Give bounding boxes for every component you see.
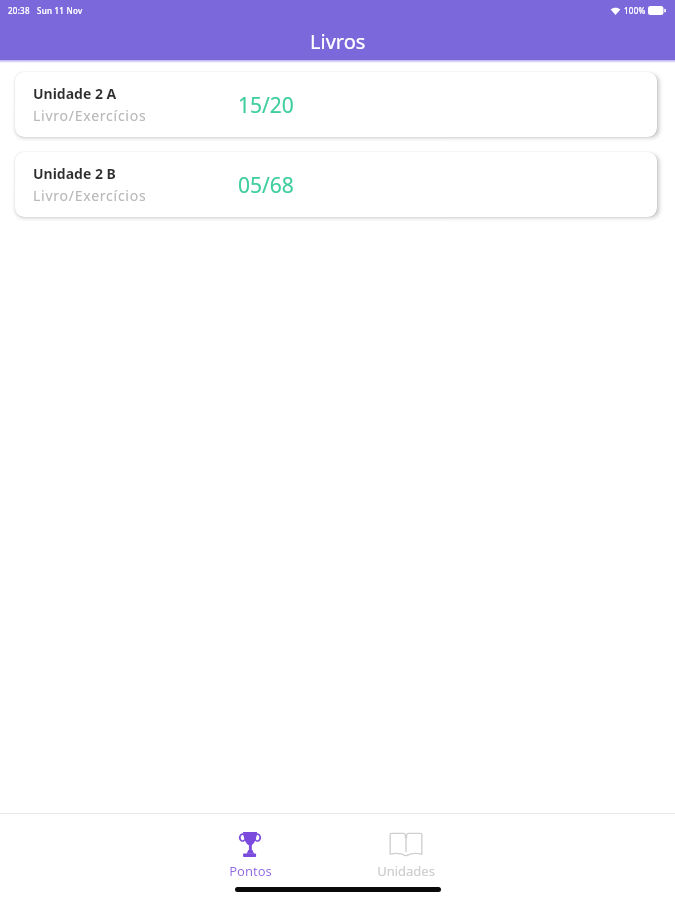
staticText: Sun 11 Nov [37, 5, 83, 16]
button[interactable]: Unidade 2 B [15, 152, 657, 217]
staticText: 20:38 [8, 5, 30, 16]
staticText: Pontos [229, 862, 272, 880]
staticText: Unidade 2 B [33, 164, 116, 183]
staticText: Livro/Exercícios [33, 186, 147, 205]
staticText: Unidade 2 A [33, 84, 117, 103]
button[interactable]: Pontos [205, 832, 295, 880]
staticText: 100% [624, 5, 646, 16]
other: Pontos [239, 832, 261, 857]
staticText: 15/20 [238, 91, 294, 120]
button[interactable]: Unidade 2 A [15, 72, 657, 137]
button[interactable]: Unidades [361, 832, 451, 880]
staticText: Livro/Exercícios [33, 106, 147, 125]
other: Unidades [389, 832, 423, 857]
staticText: Unidades [377, 862, 435, 880]
staticText: 05/68 [238, 171, 294, 200]
staticText: Livros [310, 28, 366, 55]
